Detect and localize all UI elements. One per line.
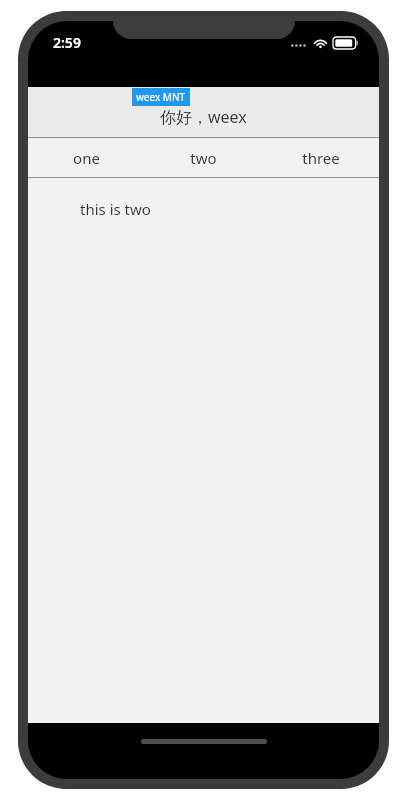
button[interactable]: three	[262, 138, 379, 177]
staticText: two	[190, 148, 217, 168]
staticText: three	[302, 148, 340, 168]
staticText: 2:59	[53, 33, 81, 52]
staticText: weex MNT	[136, 90, 186, 104]
button[interactable]: two	[145, 138, 262, 177]
staticText: this is two	[80, 199, 151, 219]
staticText: one	[73, 148, 100, 168]
button[interactable]: one	[28, 138, 145, 177]
other: weex MNT badge	[136, 90, 186, 104]
staticText: 你好，weex	[160, 106, 247, 128]
